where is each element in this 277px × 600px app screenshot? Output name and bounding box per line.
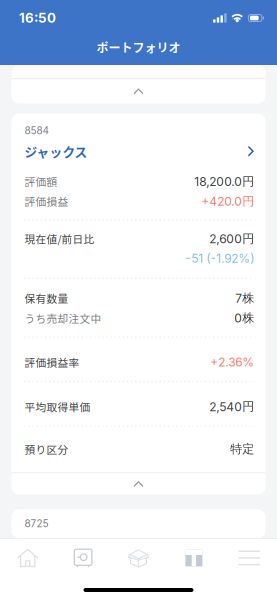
staticText: 平均取得単価 — [24, 399, 90, 414]
button[interactable]: メニュー — [222, 539, 277, 577]
button[interactable]: ホーム — [0, 539, 55, 577]
staticText: 7株 — [235, 291, 254, 306]
staticText: 評価損益率 — [24, 354, 79, 370]
staticText: ポートフォリオ — [96, 39, 180, 56]
button[interactable]: ポートフォリオ — [166, 539, 222, 577]
button[interactable]: 8584 — [11, 113, 265, 155]
button[interactable]: 資産 — [55, 539, 111, 577]
staticText: 8584 — [24, 125, 48, 137]
button[interactable] — [11, 473, 265, 495]
staticText: 2,540円 — [209, 399, 254, 414]
staticText: 0株 — [234, 310, 254, 325]
staticText: 評価損益 — [24, 193, 68, 209]
button[interactable]: 商品 — [111, 539, 166, 577]
staticText: ジャックス — [24, 142, 87, 160]
staticText: 預り区分 — [24, 441, 68, 457]
staticText: 16:50 — [19, 10, 56, 26]
staticText: +420.0円 — [201, 194, 254, 209]
staticText: 保有数量 — [24, 290, 68, 306]
staticText: 8725 — [24, 518, 48, 530]
staticText: -51 (-1.92%) — [185, 251, 254, 266]
staticText: うち売却注文中 — [24, 310, 101, 326]
button[interactable] — [11, 79, 265, 103]
staticText: 特定 — [230, 441, 254, 457]
staticText: 現在値/前日比 — [24, 231, 94, 246]
staticText: +2.36% — [210, 355, 254, 369]
staticText: 評価額 — [24, 174, 57, 189]
staticText: 18,200.0円 — [194, 174, 254, 189]
staticText: 2,600円 — [209, 231, 254, 246]
